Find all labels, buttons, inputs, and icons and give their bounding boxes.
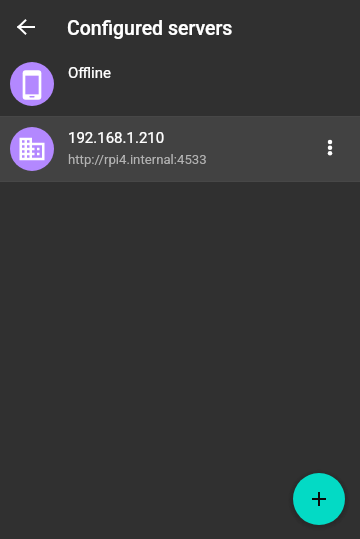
button[interactable]: Add server [293, 473, 345, 525]
staticText: Configured servers [67, 17, 233, 40]
staticText: 192.168.1.210 [68, 129, 165, 147]
button[interactable]: Offline [0, 52, 360, 116]
staticText: http://rpi4.internal:4533 [68, 152, 207, 167]
button[interactable]: More options [312, 131, 348, 167]
button[interactable]: 192.168.1.210 [0, 117, 360, 181]
button[interactable]: Back [4, 5, 48, 49]
staticText: Offline [68, 64, 112, 82]
